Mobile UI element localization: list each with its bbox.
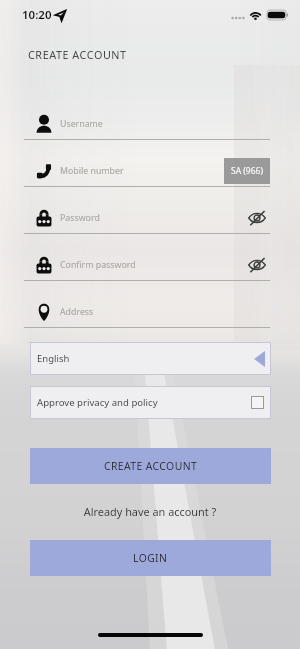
staticText: 10:20: [22, 7, 52, 23]
staticText: Confirm password: [60, 259, 136, 271]
staticText: Address: [60, 306, 94, 318]
button[interactable]: SA (966): [224, 158, 270, 184]
staticText: Already have an account ?: [0, 504, 300, 519]
button[interactable]: Approve privacy and policy: [30, 386, 271, 419]
staticText: Username: [60, 118, 103, 130]
button[interactable]: LOGIN: [30, 540, 271, 576]
staticText: LOGIN: [133, 551, 168, 565]
button[interactable]: Show password: [245, 206, 269, 230]
button[interactable]: CREATE ACCOUNT: [30, 448, 271, 484]
staticText: Password: [60, 212, 100, 224]
staticText: CREATE ACCOUNT: [28, 47, 127, 62]
button[interactable]: English: [30, 342, 271, 375]
button[interactable]: Show password: [245, 253, 269, 277]
staticText: CREATE ACCOUNT: [104, 459, 198, 473]
staticText: Mobile number: [60, 165, 124, 177]
staticText: English: [37, 352, 70, 365]
staticText: SA (966): [231, 165, 263, 177]
staticText: Approve privacy and policy: [37, 396, 158, 409]
